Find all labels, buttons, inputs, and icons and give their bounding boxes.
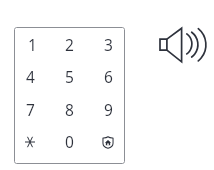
button[interactable]: 4 xyxy=(14,60,48,92)
staticText: 8 xyxy=(65,99,74,120)
button[interactable]: 7 xyxy=(14,93,48,125)
button[interactable]: 5 xyxy=(51,60,87,92)
staticText: 9 xyxy=(104,99,113,120)
staticText: 3 xyxy=(104,34,113,55)
staticText: 2 xyxy=(65,34,74,55)
button[interactable]: 0 xyxy=(51,125,87,157)
button[interactable]: 8 xyxy=(51,93,87,125)
button[interactable]: 2 xyxy=(51,28,87,60)
button[interactable]: 9 xyxy=(90,93,125,125)
staticText: 7 xyxy=(26,99,35,120)
staticText: 0 xyxy=(65,131,74,152)
staticText: 5 xyxy=(65,66,74,87)
button[interactable]: 3 xyxy=(90,28,125,60)
staticText: 4 xyxy=(26,66,35,87)
staticText: 1 xyxy=(28,34,37,55)
button[interactable]: Volume xyxy=(155,22,213,68)
button[interactable]: Arm home security xyxy=(90,125,125,157)
button[interactable]: 1 xyxy=(14,28,48,60)
button[interactable]: Star key xyxy=(14,125,48,157)
button[interactable]: 6 xyxy=(90,60,125,92)
staticText: 6 xyxy=(104,66,113,87)
